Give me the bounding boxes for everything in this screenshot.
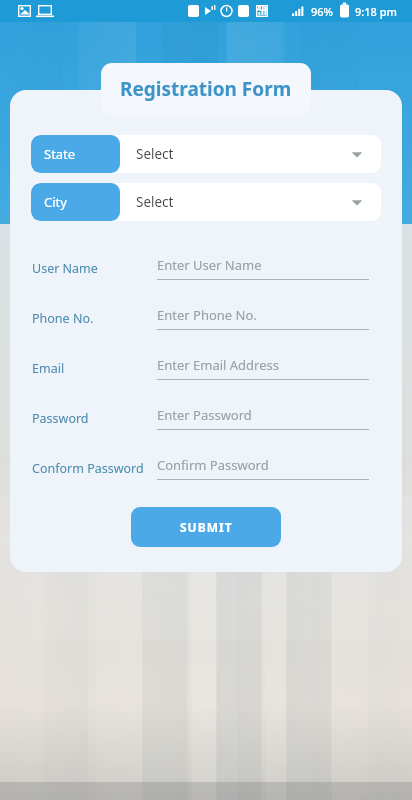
- other: Open State dropdown: [351, 148, 363, 160]
- staticText: 4G: [257, 2, 268, 13]
- button[interactable]: State: [31, 135, 381, 173]
- button[interactable]: User Name: [10, 243, 402, 293]
- staticText: Enter Phone No.: [157, 306, 257, 324]
- staticText: Conform Password: [32, 460, 144, 477]
- staticText: Email: [32, 360, 65, 377]
- button[interactable]: Registration Form: [101, 63, 311, 115]
- button[interactable]: City: [31, 183, 381, 221]
- staticText: Select: [136, 193, 174, 211]
- staticText: User Name: [32, 260, 98, 277]
- staticText: 96%: [311, 4, 333, 19]
- staticText: Registration Form: [120, 76, 292, 102]
- button[interactable]: Phone No.: [10, 293, 402, 343]
- staticText: Phone No.: [32, 310, 94, 327]
- other: Open City dropdown: [351, 196, 363, 208]
- staticText: Select: [136, 145, 174, 163]
- staticText: State: [44, 145, 76, 163]
- button[interactable]: Conform Password: [10, 443, 402, 493]
- staticText: Confirm Password: [157, 456, 269, 474]
- staticText: City: [44, 193, 67, 211]
- staticText: Enter Email Address: [157, 356, 279, 374]
- staticText: Enter Password: [157, 406, 252, 424]
- button[interactable]: Email: [10, 343, 402, 393]
- staticText: Password: [32, 410, 89, 427]
- button[interactable]: Password: [10, 393, 402, 443]
- staticText: 9:18 pm: [355, 4, 397, 19]
- button[interactable]: SUBMIT: [131, 507, 281, 547]
- staticText: Enter User Name: [157, 256, 262, 274]
- staticText: SUBMIT: [180, 519, 233, 535]
